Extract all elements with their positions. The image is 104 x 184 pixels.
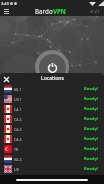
staticText: v1.2.1 (90, 9, 100, 14)
staticText: TR (14, 147, 19, 152)
button[interactable]: CA 3 (4, 124, 98, 134)
button[interactable]: NL 1 (4, 84, 98, 94)
button[interactable]: CA 1 (4, 104, 98, 114)
staticText: CA 4 (14, 137, 22, 142)
button[interactable]: NL 2 (4, 154, 98, 164)
staticText: Ready! (84, 106, 98, 112)
button[interactable]: Connect (35, 50, 69, 84)
staticText: VPN (53, 7, 66, 15)
button[interactable]: CA 4 (4, 134, 98, 144)
staticText: Ready! (84, 96, 98, 102)
button[interactable]: UK (4, 164, 98, 174)
button[interactable]: Menu (2, 7, 11, 16)
button[interactable]: Close (2, 75, 10, 83)
staticText: Ready! (84, 86, 98, 92)
staticText: Ready! (84, 156, 98, 162)
staticText: 3:40 (1, 1, 9, 6)
staticText: CA 2 (14, 117, 22, 122)
staticText: NL 1 (14, 87, 22, 92)
staticText: Ready! (84, 136, 98, 142)
staticText: UK (14, 167, 19, 172)
button[interactable]: CA 2 (4, 114, 98, 124)
staticText: NL 2 (14, 157, 22, 162)
staticText: CA 1 (14, 107, 22, 112)
staticText: Locations (41, 75, 64, 82)
staticText: US 1 (14, 97, 22, 102)
staticText: CA 3 (14, 127, 22, 132)
staticText: Ready! (84, 126, 98, 132)
staticText: Ready! (84, 116, 98, 122)
staticText: Ready! (84, 166, 98, 172)
staticText: Ready! (84, 146, 98, 152)
staticText: Bardo (35, 7, 53, 15)
button[interactable]: TR (4, 144, 98, 154)
button[interactable]: US 1 (4, 94, 98, 104)
